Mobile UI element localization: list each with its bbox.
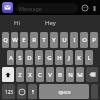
staticText: Q (3, 36, 8, 44)
button[interactable]: P (90, 32, 98, 48)
button[interactable]: R (30, 32, 38, 48)
button[interactable]: Voice input (28, 84, 37, 99)
staticText: space (58, 89, 71, 95)
staticText: E (22, 36, 26, 44)
button[interactable]: Y (50, 32, 58, 48)
staticText: F (37, 54, 41, 62)
button[interactable]: S (16, 50, 23, 65)
button[interactable]: F (35, 50, 43, 65)
button[interactable]: O (80, 32, 88, 48)
staticText: J (68, 54, 70, 62)
staticText: Hey (45, 19, 56, 27)
button[interactable]: J (65, 50, 73, 65)
staticText: Hi (14, 19, 20, 27)
button[interactable]: T (40, 32, 48, 48)
staticText: Z (18, 71, 22, 79)
button[interactable]: C (36, 67, 44, 82)
staticText: R (32, 36, 36, 44)
button[interactable]: Q (2, 32, 9, 48)
staticText: O (82, 36, 87, 44)
button[interactable]: Hey (34, 15, 67, 31)
button[interactable]: K (75, 50, 83, 65)
button[interactable]: L (85, 50, 93, 65)
button[interactable]: Z (16, 67, 24, 82)
staticText: Y (52, 36, 56, 44)
staticText: B (58, 71, 62, 79)
staticText: D (27, 54, 32, 62)
button[interactable]: Shift (2, 67, 14, 82)
staticText: N (68, 71, 73, 79)
button[interactable]: V (46, 67, 54, 82)
staticText: Message (19, 5, 42, 12)
staticText: A (9, 54, 13, 62)
button[interactable]: X (26, 67, 34, 82)
button[interactable]: space (39, 84, 89, 99)
staticText: H (57, 54, 62, 62)
button[interactable]: E (20, 32, 28, 48)
button[interactable]: U (60, 32, 68, 48)
button[interactable]: N (66, 67, 74, 82)
button[interactable]: G (45, 50, 53, 65)
button[interactable]: I (70, 32, 78, 48)
button[interactable]: M (76, 67, 84, 82)
button[interactable]: Backspace (86, 67, 98, 82)
staticText: C (38, 71, 42, 79)
staticText: I (73, 36, 76, 44)
button[interactable]: H (55, 50, 63, 65)
staticText: U (62, 36, 67, 44)
button[interactable]: Hi (0, 15, 34, 31)
button[interactable]: Emoji (17, 84, 26, 99)
staticText: K (77, 54, 81, 62)
button[interactable]: Emoji (80, 3, 90, 13)
staticText: V (48, 71, 52, 79)
button[interactable]: W (11, 32, 18, 48)
staticText: W (12, 36, 18, 44)
staticText: L (87, 54, 91, 62)
staticText: G (47, 54, 52, 62)
button[interactable]: 123 (2, 84, 15, 99)
button[interactable]: Send (90, 4, 98, 12)
button[interactable]: D (25, 50, 33, 65)
staticText: S (18, 54, 22, 62)
staticText: T (42, 36, 46, 44)
staticText: X (28, 71, 32, 79)
button[interactable]: Message (16, 3, 78, 13)
staticText: 123 (5, 89, 13, 95)
button[interactable]: A (7, 50, 14, 65)
staticText: M (77, 71, 83, 79)
staticText: P (92, 36, 96, 44)
button[interactable]: B (56, 67, 64, 82)
button[interactable]: Period (91, 84, 98, 99)
button[interactable]: Attach image (2, 2, 13, 13)
